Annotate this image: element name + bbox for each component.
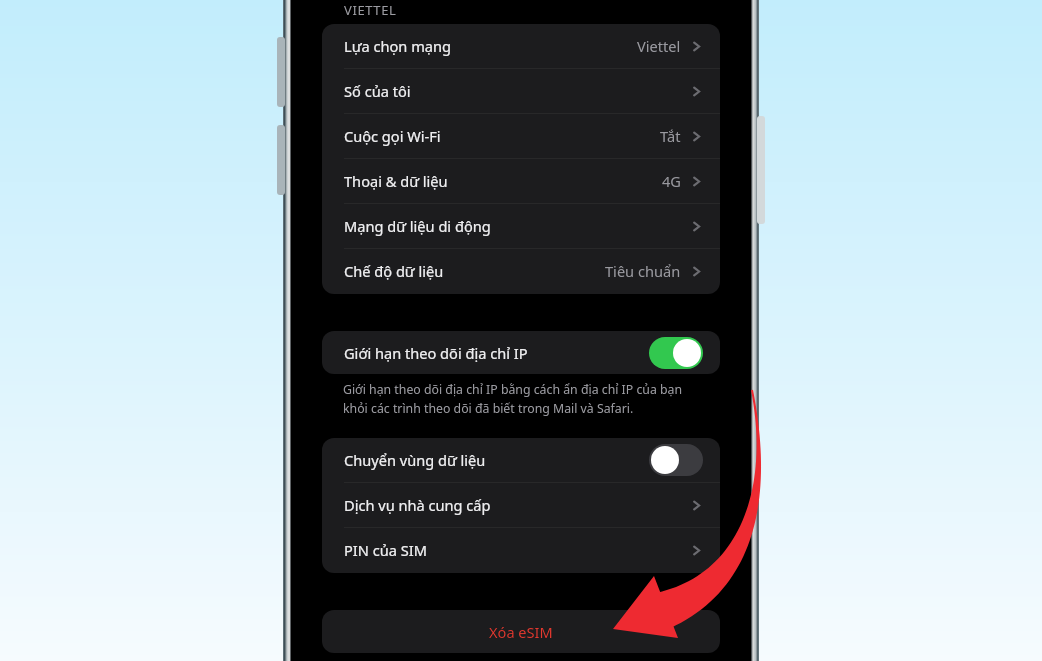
button[interactable]: Xóa eSIM (322, 610, 720, 653)
staticText: Tắt (660, 126, 681, 146)
button[interactable]: Giới hạn theo dõi địa chỉ IP (322, 331, 720, 374)
other: Power (757, 116, 765, 224)
button[interactable]: Lựa chọn mạng (322, 24, 720, 68)
button[interactable]: Mạng dữ liệu di động (322, 204, 720, 248)
staticText: Giới hạn theo dõi địa chỉ IP bằng cách ẩ… (343, 381, 683, 417)
staticText: 4G (662, 171, 681, 191)
button[interactable]: Cuộc gọi Wi-Fi (322, 114, 720, 158)
staticText: Chế độ dữ liệu (344, 261, 444, 281)
staticText: Xóa eSIM (489, 622, 553, 642)
staticText: Chuyển vùng dữ liệu (344, 450, 486, 470)
staticText: PIN của SIM (344, 540, 427, 560)
button[interactable]: Chuyển vùng dữ liệu (322, 438, 720, 482)
staticText: Dịch vụ nhà cung cấp (344, 495, 491, 515)
button[interactable]: Thoại & dữ liệu (322, 159, 720, 203)
button[interactable]: PIN của SIM (322, 528, 720, 572)
button[interactable]: Số của tôi (322, 69, 720, 113)
staticText: Viettel (637, 36, 681, 56)
staticText: Giới hạn theo dõi địa chỉ IP (344, 343, 528, 363)
staticText: VIETTEL (344, 1, 397, 19)
button[interactable]: Chế độ dữ liệu (322, 249, 720, 293)
staticText: Số của tôi (344, 81, 411, 101)
staticText: Lựa chọn mạng (344, 36, 451, 56)
staticText: Cuộc gọi Wi-Fi (344, 126, 441, 146)
staticText: Tiêu chuẩn (605, 261, 681, 281)
button[interactable]: Dịch vụ nhà cung cấp (322, 483, 720, 527)
staticText: Mạng dữ liệu di động (344, 216, 491, 236)
other: Volume up (277, 37, 285, 107)
staticText: Thoại & dữ liệu (344, 171, 448, 191)
other: Volume down (277, 125, 285, 195)
